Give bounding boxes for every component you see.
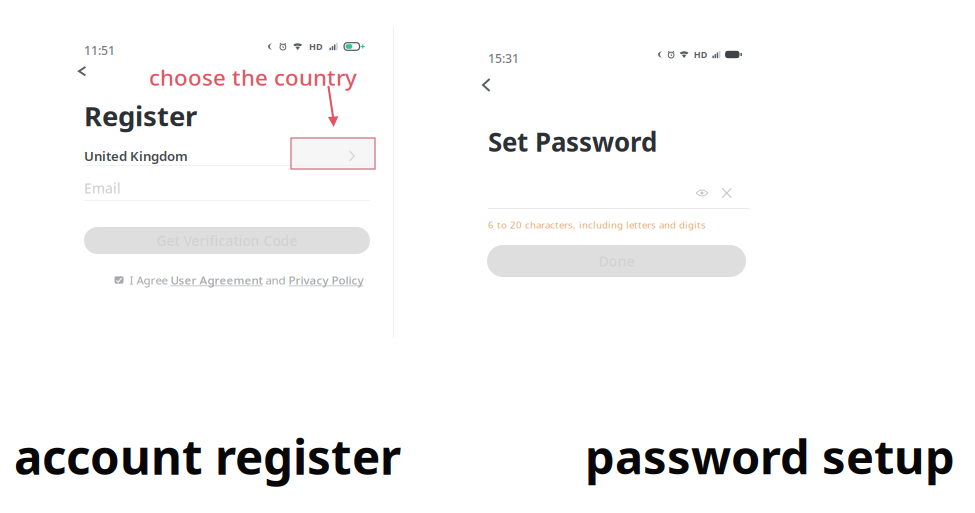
staticText: United Kingdom [84, 147, 188, 165]
staticText: account register [14, 424, 401, 489]
staticText: Done [598, 251, 634, 271]
button[interactable]: Show password [692, 185, 712, 201]
staticText: and [262, 272, 288, 288]
button[interactable]: Back [71, 59, 93, 83]
button[interactable]: Email [84, 175, 370, 201]
button[interactable]: Privacy Policy [288, 272, 363, 288]
staticText: HD [309, 40, 323, 53]
staticText: 15:31 [488, 50, 519, 67]
staticText: password setup [585, 424, 955, 488]
staticText: 11:51 [84, 42, 115, 59]
button[interactable]: Agree to terms [114, 275, 123, 284]
staticText: 6 to 20 characters, including letters an… [488, 218, 706, 231]
staticText: Set Password [488, 124, 657, 159]
button[interactable]: Done [487, 245, 746, 277]
staticText: Register [84, 97, 197, 134]
staticText: Privacy Policy [288, 272, 363, 288]
button[interactable]: Get Verification Code [84, 227, 370, 254]
staticText: choose the country [149, 62, 357, 92]
staticText: Email [84, 179, 121, 197]
button[interactable]: Back [475, 71, 498, 99]
staticText: User Agreement [170, 272, 262, 288]
staticText: HD [694, 48, 708, 61]
staticText: Get Verification Code [156, 231, 297, 250]
staticText: I Agree [123, 272, 170, 288]
button[interactable]: Clear text [717, 184, 736, 202]
button[interactable]: United Kingdom [84, 143, 355, 169]
button[interactable]: User Agreement [170, 272, 262, 288]
